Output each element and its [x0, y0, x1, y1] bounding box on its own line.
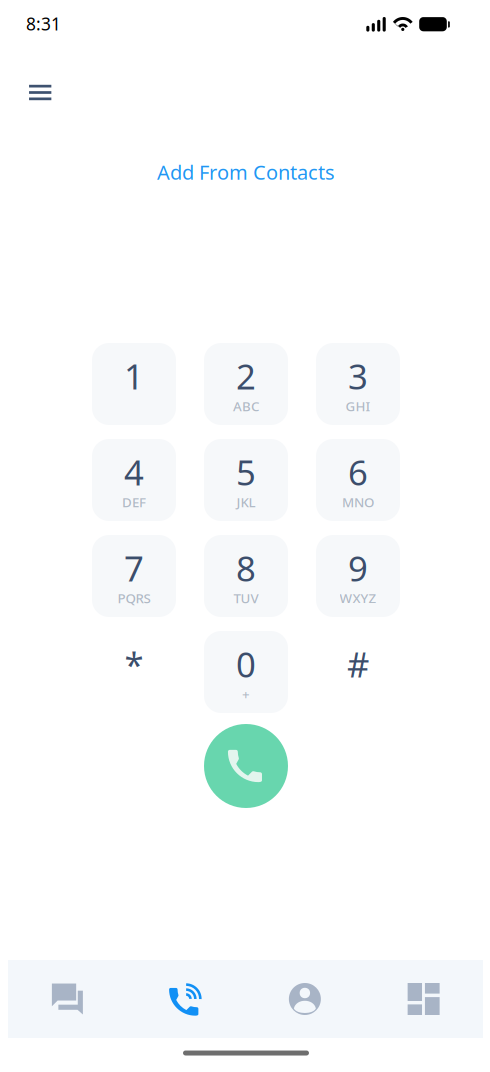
- staticText: ABC: [233, 397, 259, 415]
- staticText: *: [124, 641, 143, 687]
- staticText: 9: [348, 545, 368, 591]
- staticText: 6: [348, 449, 368, 495]
- staticText: PQRS: [117, 589, 150, 607]
- button[interactable]: *: [92, 631, 176, 713]
- button[interactable]: 4: [92, 439, 176, 521]
- staticText: 1: [124, 353, 144, 399]
- staticText: 8:31: [26, 12, 61, 35]
- staticText: 2: [236, 353, 256, 399]
- button[interactable]: 0: [204, 631, 288, 713]
- staticText: 5: [236, 449, 256, 495]
- button[interactable]: Messages: [8, 960, 127, 1038]
- staticText: DEF: [122, 493, 146, 511]
- button[interactable]: Keypad: [127, 960, 246, 1038]
- button[interactable]: 9: [316, 535, 400, 617]
- staticText: 0: [236, 641, 256, 687]
- staticText: WXYZ: [339, 589, 376, 607]
- button[interactable]: 8: [204, 535, 288, 617]
- button[interactable]: Call: [204, 724, 288, 808]
- staticText: GHI: [345, 397, 370, 415]
- staticText: Add From Contacts: [157, 159, 335, 185]
- button[interactable]: 1: [92, 343, 176, 425]
- staticText: MNO: [342, 493, 374, 511]
- button[interactable]: 3: [316, 343, 400, 425]
- staticText: +: [242, 685, 250, 703]
- button[interactable]: 7: [92, 535, 176, 617]
- staticText: 3: [348, 353, 368, 399]
- button[interactable]: 6: [316, 439, 400, 521]
- staticText: TUV: [233, 589, 258, 607]
- button[interactable]: Menu: [17, 70, 63, 114]
- staticText: 8: [236, 545, 256, 591]
- button[interactable]: Add From Contacts: [136, 157, 356, 187]
- staticText: 7: [124, 545, 144, 591]
- button[interactable]: More: [364, 960, 483, 1038]
- staticText: 4: [124, 449, 144, 495]
- button[interactable]: 2: [204, 343, 288, 425]
- button[interactable]: #: [316, 631, 400, 713]
- staticText: #: [347, 641, 369, 687]
- button[interactable]: Contacts: [245, 960, 364, 1038]
- button[interactable]: 5: [204, 439, 288, 521]
- staticText: JKL: [236, 493, 255, 511]
